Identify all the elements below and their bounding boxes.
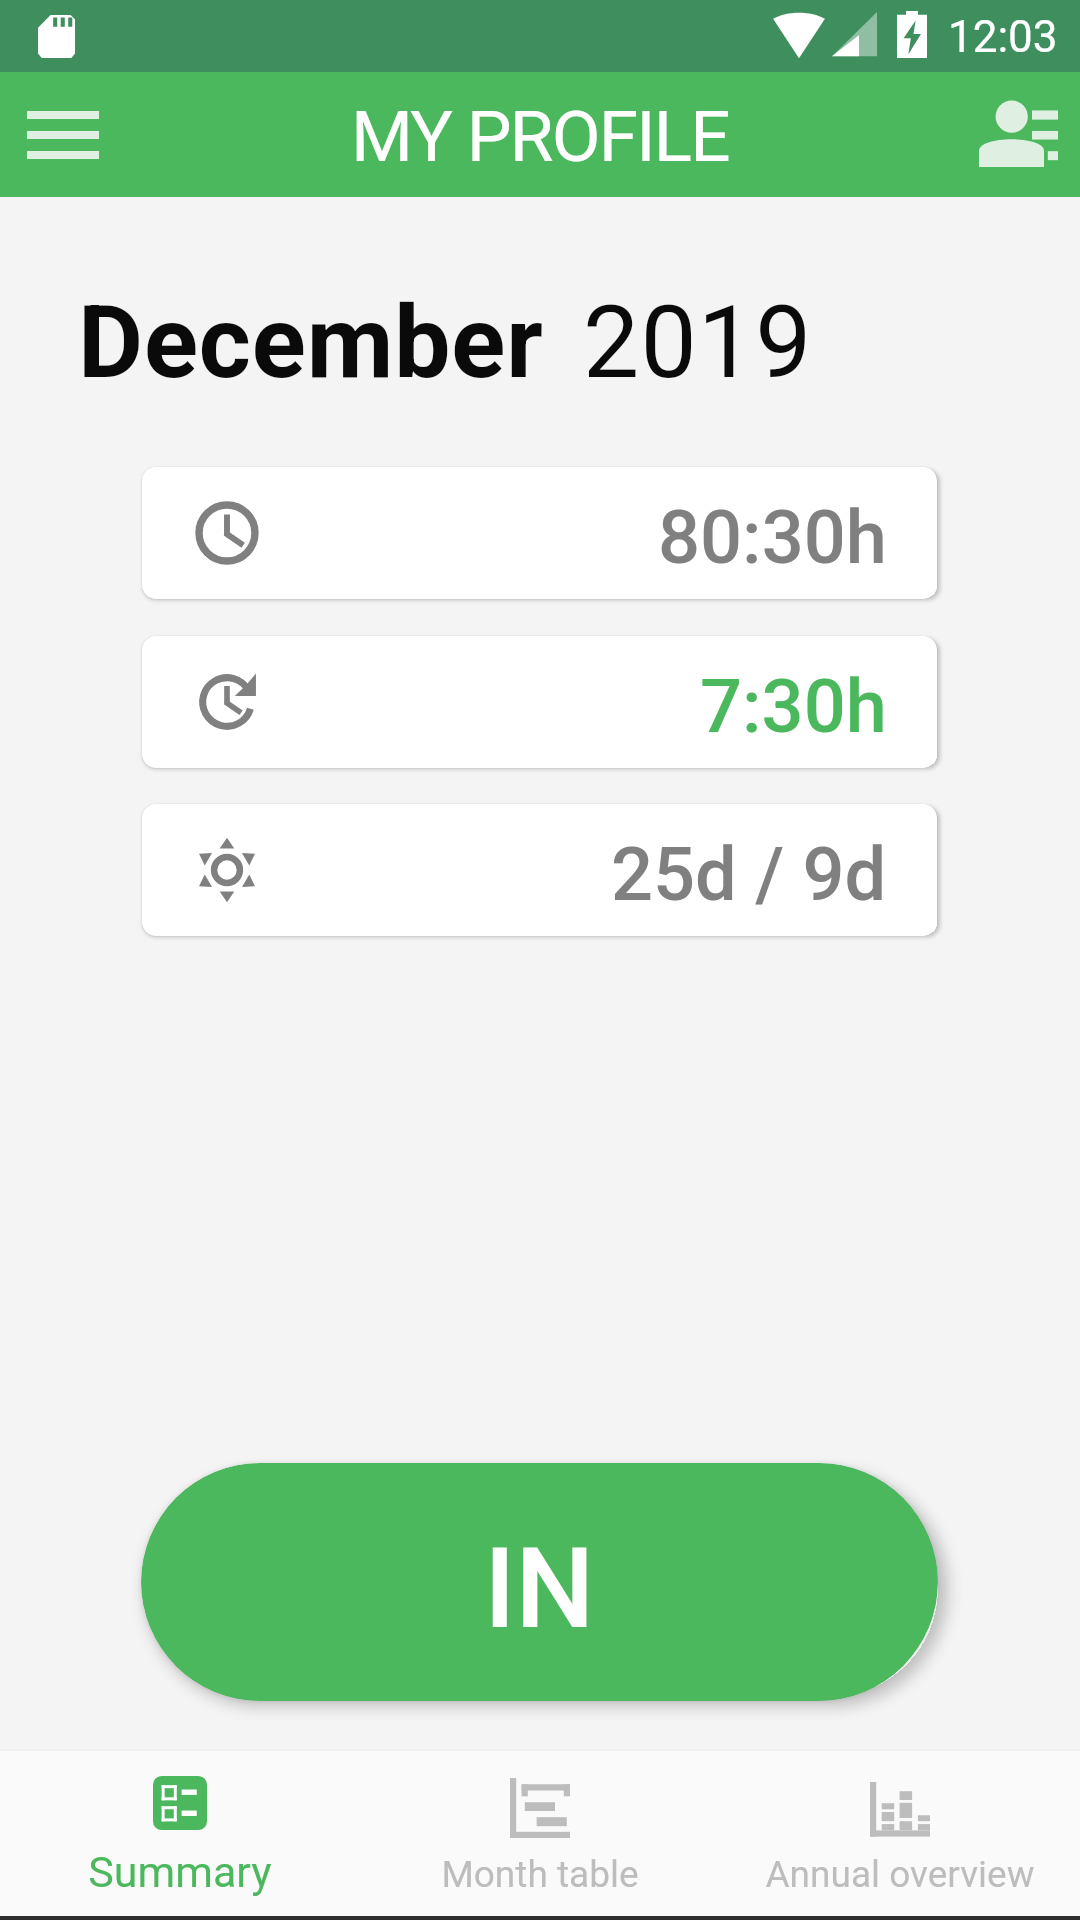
button[interactable]: Annual overview	[720, 1751, 1080, 1806]
button[interactable]: Contacts	[955, 72, 1080, 197]
staticText: 7:30h	[700, 663, 887, 750]
button[interactable]: Open navigation menu	[0, 72, 125, 197]
staticText: 80:30h	[658, 494, 887, 581]
staticText: IN	[484, 1524, 595, 1654]
staticText: 25d / 9d	[611, 831, 887, 918]
button[interactable]: Summary	[0, 1751, 360, 1805]
staticText: 2019	[583, 284, 813, 401]
button[interactable]: Month table	[360, 1751, 720, 1811]
button[interactable]: 7:30h	[142, 636, 937, 768]
staticText: Month table	[441, 1853, 639, 1896]
staticText: 12:03	[948, 11, 1058, 63]
staticText: MY PROFILE	[351, 95, 729, 178]
staticText: December	[78, 284, 544, 401]
button[interactable]: 25d / 9d	[142, 804, 937, 936]
staticText: Annual overview	[765, 1853, 1035, 1896]
button[interactable]: IN	[141, 1463, 938, 1701]
staticText: Summary	[88, 1847, 272, 1897]
button[interactable]: 80:30h	[142, 467, 937, 599]
